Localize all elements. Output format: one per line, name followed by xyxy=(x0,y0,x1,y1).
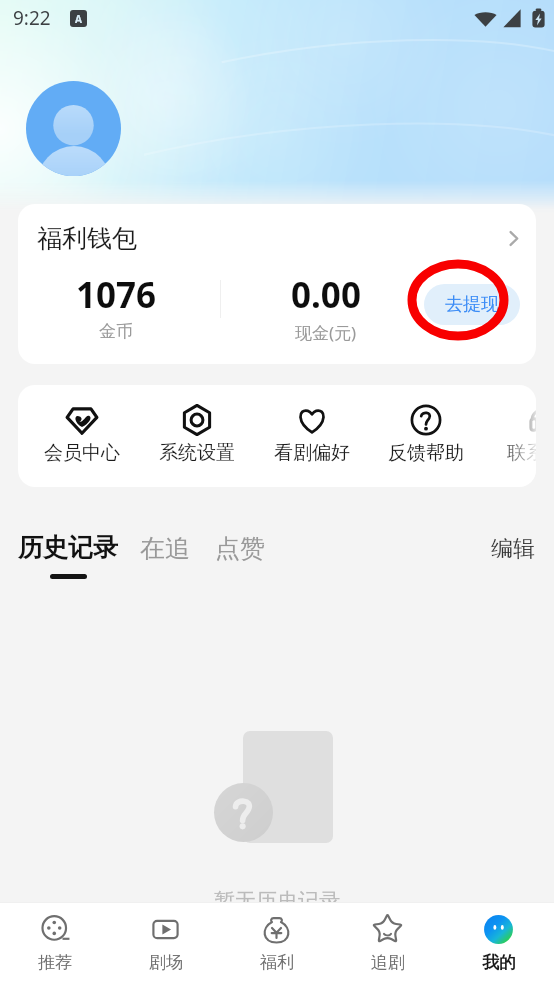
staticText: 我的 xyxy=(482,952,516,973)
staticText: 追剧 xyxy=(371,952,405,973)
staticText: 联系客服 xyxy=(507,441,536,465)
staticText: 9:22 xyxy=(13,5,51,31)
staticText: 点赞 xyxy=(215,533,265,564)
button[interactable]: 编辑 xyxy=(491,535,535,563)
staticText: 历史记录 xyxy=(18,532,118,563)
button[interactable]: 会员中心 xyxy=(27,404,137,465)
staticText: 现金(元) xyxy=(295,321,357,344)
staticText: 去提现 xyxy=(445,293,499,316)
button[interactable]: 福利钱包 xyxy=(18,204,536,364)
button[interactable]: Profile avatar xyxy=(26,81,121,176)
staticText: 福利 xyxy=(260,952,294,973)
button[interactable]: 剧场 xyxy=(110,914,221,973)
staticText: 系统设置 xyxy=(159,441,235,465)
button[interactable]: 追剧 xyxy=(332,914,443,973)
staticText: 1076 xyxy=(76,271,157,319)
button[interactable]: 联系客服 xyxy=(490,404,536,465)
button[interactable]: 推荐 xyxy=(0,914,110,973)
button[interactable]: 历史记录 xyxy=(18,532,118,579)
button[interactable]: 福利 xyxy=(221,914,332,973)
staticText: 在追 xyxy=(140,533,190,564)
button[interactable]: 反馈帮助 xyxy=(371,404,481,465)
staticText: 反馈帮助 xyxy=(388,441,464,465)
button[interactable]: 看剧偏好 xyxy=(257,404,367,465)
staticText: A xyxy=(75,12,82,26)
button[interactable]: 点赞 xyxy=(215,533,265,564)
staticText: 福利钱包 xyxy=(37,223,137,254)
staticText: 看剧偏好 xyxy=(274,441,350,465)
button[interactable]: 在追 xyxy=(140,533,190,564)
staticText: 暂无历史记录 xyxy=(214,888,340,914)
staticText: 编辑 xyxy=(491,535,535,563)
button[interactable]: 去提现 xyxy=(424,284,520,325)
staticText: 剧场 xyxy=(149,952,183,973)
staticText: 会员中心 xyxy=(44,441,120,465)
button[interactable]: 系统设置 xyxy=(142,404,252,465)
staticText: 推荐 xyxy=(38,952,72,973)
staticText: 0.00 xyxy=(291,271,361,319)
staticText: 金币 xyxy=(99,321,133,342)
button[interactable]: 我的 xyxy=(443,914,554,973)
